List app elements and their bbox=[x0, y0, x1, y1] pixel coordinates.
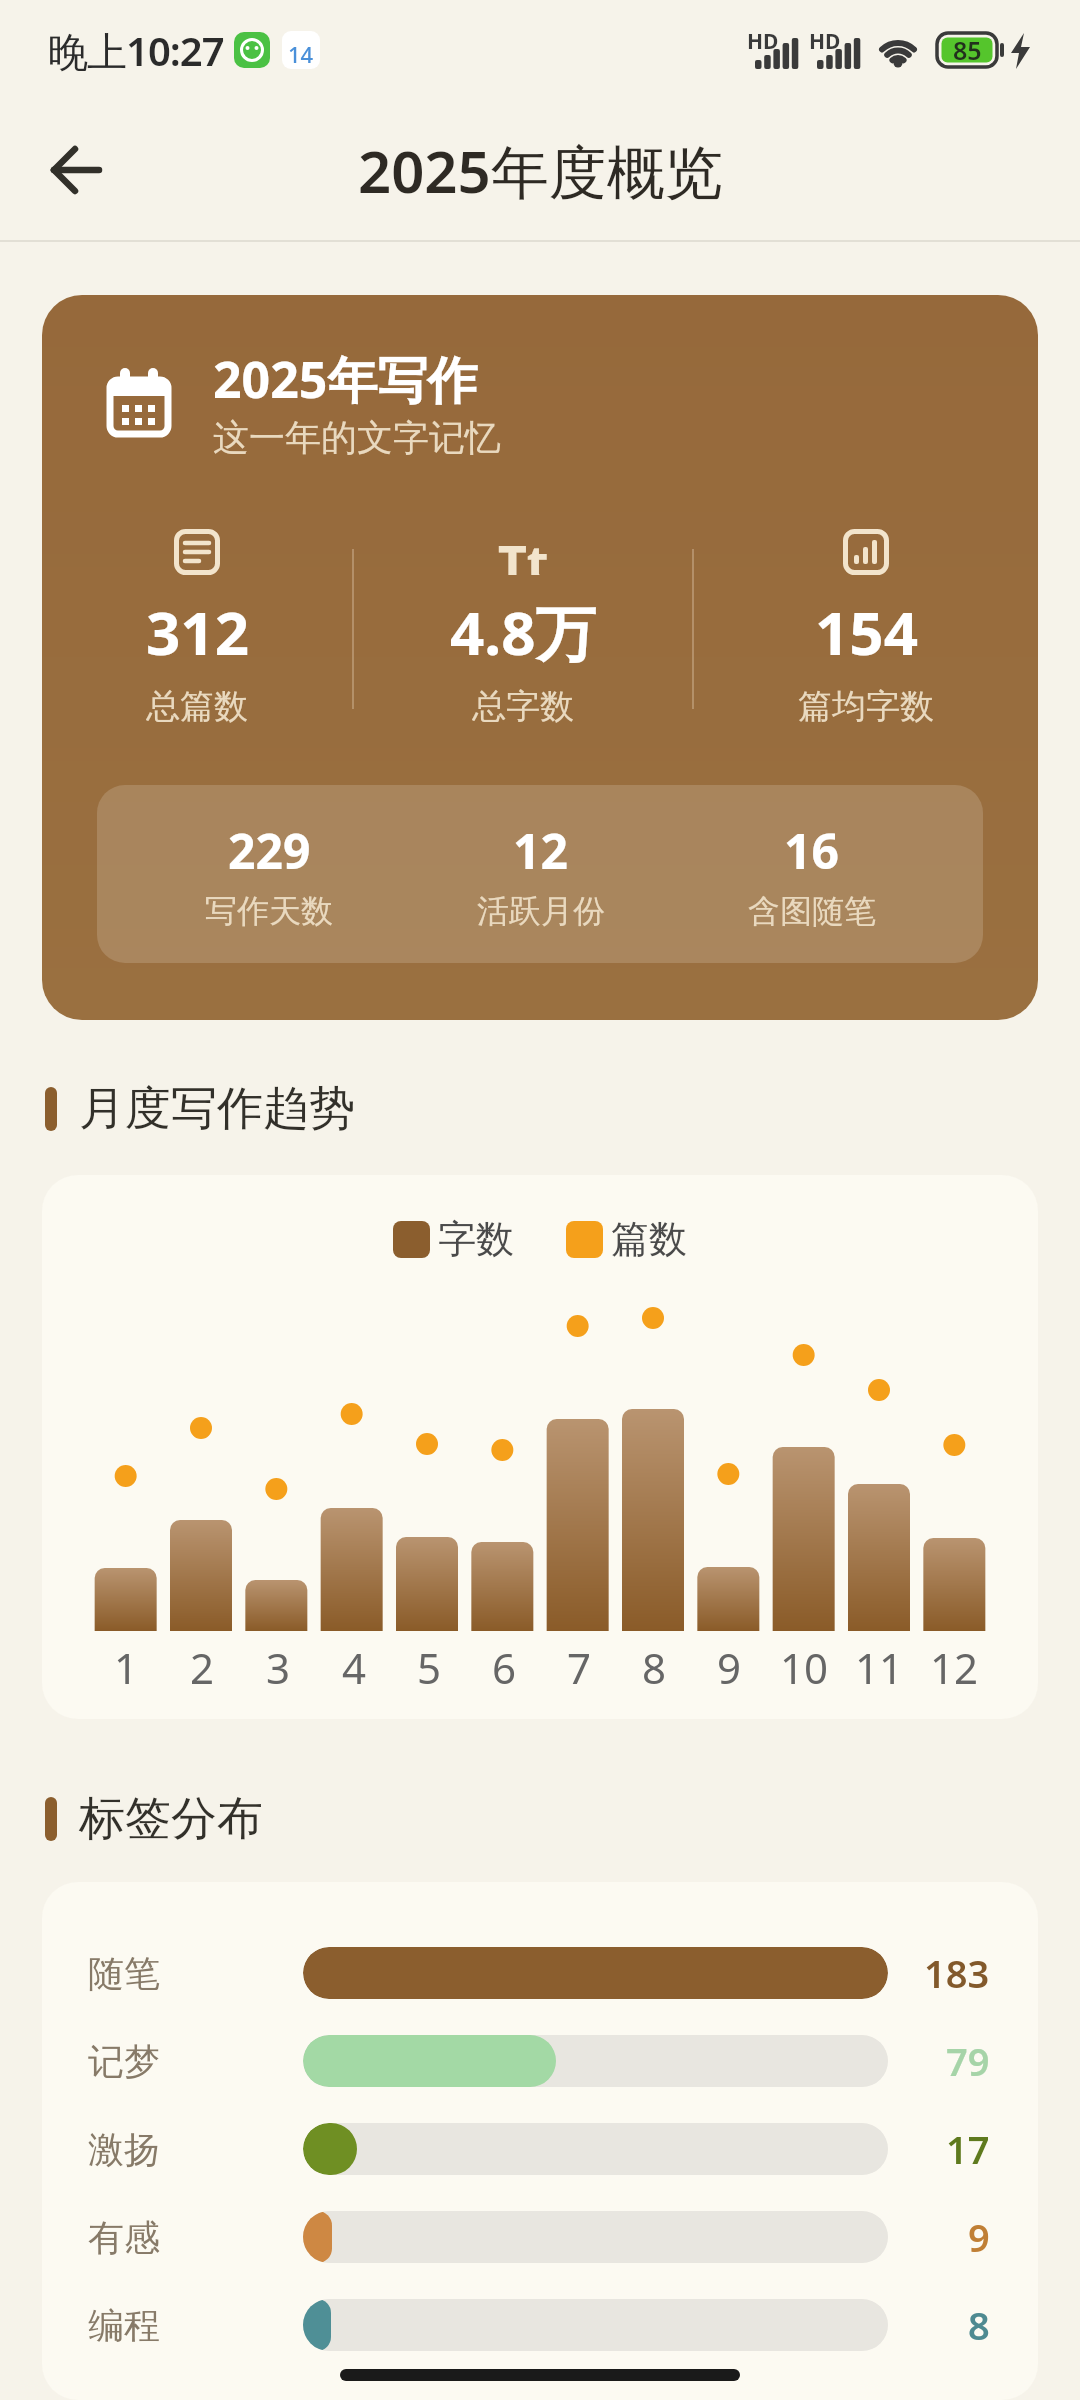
staticText: 总字数 bbox=[472, 685, 574, 728]
staticText: 4.8万 bbox=[450, 591, 596, 673]
staticText: 标签分布 bbox=[79, 1790, 263, 1848]
staticText: 85 bbox=[953, 33, 982, 67]
button[interactable] bbox=[40, 134, 112, 206]
staticText: HD bbox=[809, 27, 841, 56]
staticText: 含图随笔 bbox=[748, 891, 876, 931]
staticText: 编程 bbox=[88, 2303, 160, 2348]
staticText: 154 bbox=[815, 591, 918, 673]
staticText: 12 bbox=[513, 818, 568, 883]
staticText: Tt bbox=[498, 529, 549, 575]
staticText: 2025年度概览 bbox=[358, 131, 723, 210]
staticText: 有感 bbox=[88, 2215, 160, 2260]
staticText: 月度写作趋势 bbox=[79, 1080, 355, 1138]
staticText: 5 bbox=[417, 1639, 442, 1696]
staticText: 写作天数 bbox=[205, 891, 333, 931]
staticText: 183 bbox=[924, 1947, 990, 1999]
staticText: 记梦 bbox=[88, 2039, 160, 2084]
staticText: 12 bbox=[930, 1639, 979, 1696]
staticText: HD bbox=[747, 27, 779, 56]
staticText: 7 bbox=[567, 1639, 592, 1696]
staticText: 1 bbox=[114, 1639, 139, 1696]
staticText: 晚上10:27 bbox=[48, 23, 224, 78]
staticText: 8 bbox=[642, 1639, 667, 1696]
staticText: 229 bbox=[228, 818, 311, 883]
staticText: 6 bbox=[492, 1639, 517, 1696]
staticText: 10 bbox=[780, 1639, 829, 1696]
staticText: 16 bbox=[784, 818, 839, 883]
staticText: 9 bbox=[717, 1639, 742, 1696]
staticText: 8 bbox=[968, 2299, 990, 2351]
staticText: 312 bbox=[146, 591, 249, 673]
staticText: 随笔 bbox=[88, 1951, 160, 1996]
staticText: 17 bbox=[946, 2123, 990, 2175]
staticText: 11 bbox=[855, 1639, 904, 1696]
staticText: 总篇数 bbox=[146, 685, 248, 728]
staticText: 3 bbox=[266, 1639, 291, 1696]
staticText: 篇均字数 bbox=[798, 685, 934, 728]
staticText: 79 bbox=[946, 2035, 990, 2087]
staticText: 4 bbox=[342, 1639, 367, 1696]
staticText: 字数 bbox=[438, 1215, 514, 1263]
staticText: 2 bbox=[190, 1639, 215, 1696]
staticText: 这一年的文字记忆 bbox=[213, 415, 501, 460]
staticText: 激扬 bbox=[88, 2127, 160, 2172]
staticText: 活跃月份 bbox=[477, 891, 605, 931]
staticText: 14 bbox=[288, 39, 314, 69]
staticText: 篇数 bbox=[611, 1215, 687, 1263]
staticText: 9 bbox=[968, 2211, 990, 2263]
staticText: 2025年写作 bbox=[213, 345, 478, 413]
